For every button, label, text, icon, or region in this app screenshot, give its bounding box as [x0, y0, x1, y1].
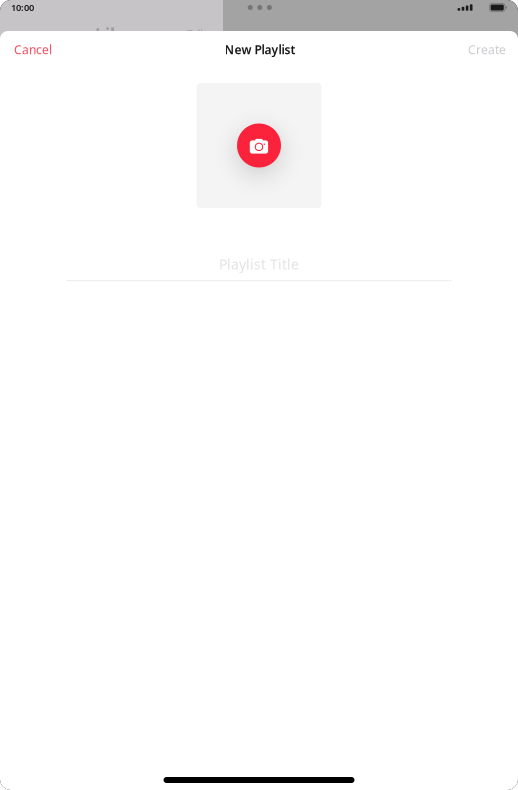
staticText: Create [468, 41, 506, 57]
button[interactable]: Cancel [11, 33, 55, 65]
button[interactable]: Choose playlist artwork [196, 83, 321, 208]
staticText: Playlist Title [219, 255, 299, 273]
staticText: Cancel [14, 41, 52, 57]
staticText: 10:00 [11, 1, 34, 14]
button[interactable]: Create [465, 33, 509, 65]
staticText: New Playlist [224, 41, 295, 57]
staticText: Library [95, 23, 156, 46]
staticText: Edit [186, 26, 207, 42]
